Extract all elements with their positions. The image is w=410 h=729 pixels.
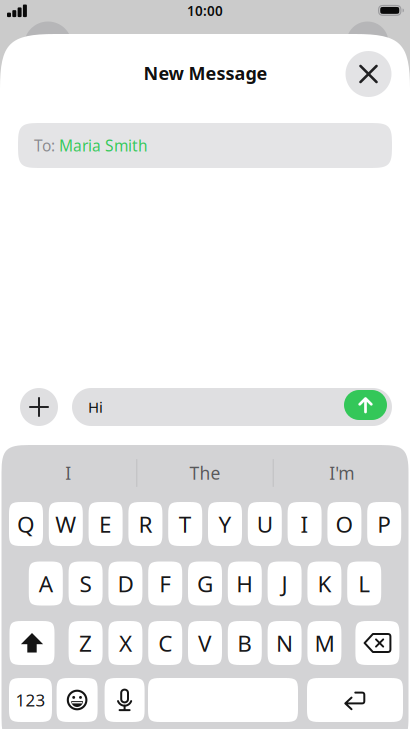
button[interactable]: X bbox=[108, 621, 142, 665]
staticText: L bbox=[358, 568, 370, 599]
staticText: E bbox=[99, 509, 112, 539]
button[interactable]: A bbox=[29, 561, 63, 605]
button[interactable]: I'm bbox=[282, 456, 402, 490]
button[interactable]: R bbox=[128, 502, 162, 546]
staticText: Z bbox=[79, 628, 92, 658]
staticText: Y bbox=[218, 509, 231, 539]
button[interactable]: Z bbox=[69, 621, 103, 665]
button[interactable] bbox=[57, 678, 98, 722]
staticText: Hi bbox=[88, 397, 103, 417]
button[interactable]: L bbox=[347, 561, 381, 605]
staticText: K bbox=[317, 568, 331, 599]
staticText: Maria Smith bbox=[59, 135, 148, 156]
staticText: The bbox=[189, 461, 220, 485]
button[interactable]: T bbox=[168, 502, 202, 546]
staticText: 123 bbox=[15, 688, 45, 712]
button[interactable]: U bbox=[248, 502, 282, 546]
staticText: R bbox=[138, 509, 152, 539]
button[interactable]: I bbox=[8, 456, 128, 490]
staticText: I bbox=[301, 509, 309, 539]
button[interactable]: J bbox=[268, 561, 302, 605]
button[interactable]: I bbox=[288, 502, 322, 546]
button[interactable] bbox=[20, 388, 58, 426]
button[interactable]: F bbox=[148, 561, 182, 605]
staticText: M bbox=[314, 628, 334, 658]
staticText: A bbox=[39, 568, 53, 599]
button[interactable]: S bbox=[69, 561, 103, 605]
button[interactable]: Q bbox=[9, 502, 43, 546]
button[interactable] bbox=[345, 51, 391, 97]
button[interactable]: G bbox=[188, 561, 222, 605]
button[interactable] bbox=[307, 678, 403, 722]
staticText: H bbox=[236, 568, 253, 599]
button[interactable]: H bbox=[228, 561, 262, 605]
staticText: F bbox=[159, 568, 171, 599]
button[interactable]: O bbox=[327, 502, 361, 546]
button[interactable]: N bbox=[268, 621, 302, 665]
button[interactable] bbox=[148, 678, 298, 722]
button[interactable]: Y bbox=[208, 502, 242, 546]
staticText: O bbox=[335, 509, 353, 539]
staticText: W bbox=[55, 509, 76, 539]
button[interactable]: 123 bbox=[9, 678, 52, 722]
staticText: I'm bbox=[329, 461, 354, 485]
button[interactable]: C bbox=[148, 621, 182, 665]
button[interactable]: P bbox=[367, 502, 401, 546]
button[interactable]: D bbox=[108, 561, 142, 605]
staticText: C bbox=[158, 628, 172, 658]
staticText: To: bbox=[34, 135, 59, 156]
button[interactable]: K bbox=[307, 561, 341, 605]
button[interactable]: The bbox=[145, 456, 265, 490]
button[interactable]: W bbox=[49, 502, 83, 546]
staticText: J bbox=[282, 568, 288, 599]
button[interactable] bbox=[355, 621, 399, 665]
staticText: I bbox=[65, 461, 71, 485]
staticText: X bbox=[119, 628, 132, 658]
button[interactable]: B bbox=[228, 621, 262, 665]
staticText: N bbox=[276, 628, 293, 658]
staticText: D bbox=[117, 568, 133, 599]
staticText: 10:00 bbox=[187, 1, 223, 20]
staticText: New Message bbox=[143, 61, 267, 85]
button[interactable]: Hi bbox=[72, 388, 392, 426]
staticText: B bbox=[237, 628, 252, 658]
staticText: T bbox=[179, 509, 192, 539]
button[interactable]: E bbox=[89, 502, 123, 546]
button[interactable]: V bbox=[188, 621, 222, 665]
button[interactable]: M bbox=[307, 621, 341, 665]
button[interactable]: To: bbox=[18, 123, 392, 168]
staticText: Q bbox=[17, 509, 35, 539]
button[interactable] bbox=[344, 390, 387, 420]
button[interactable] bbox=[9, 621, 54, 665]
staticText: V bbox=[198, 628, 212, 658]
staticText: U bbox=[257, 509, 273, 539]
staticText: P bbox=[377, 509, 391, 539]
staticText: G bbox=[197, 568, 213, 599]
button[interactable] bbox=[105, 678, 145, 722]
staticText: S bbox=[80, 568, 92, 599]
